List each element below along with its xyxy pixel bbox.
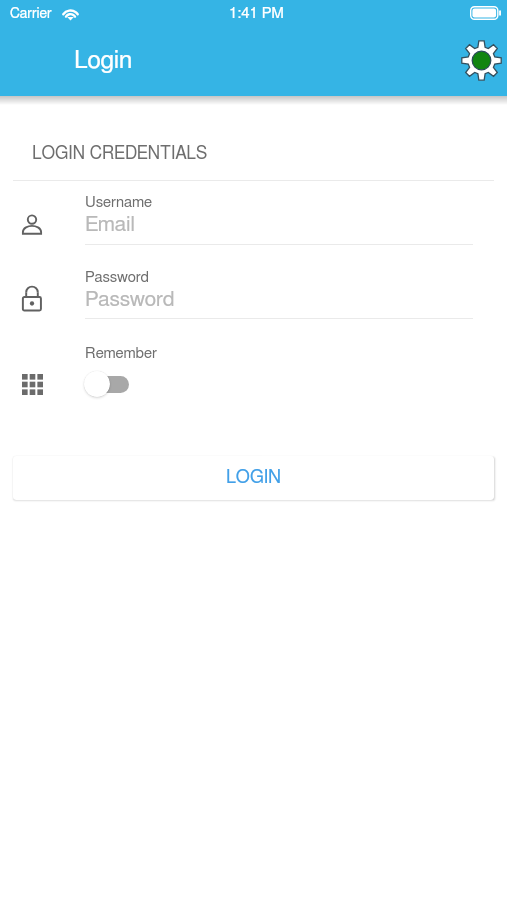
- staticText: Remember: [85, 346, 157, 361]
- staticText: Username: [85, 195, 153, 210]
- staticText: Password: [85, 270, 149, 285]
- button[interactable]: Password: [0, 256, 507, 330]
- staticText: LOGIN: [226, 469, 282, 487]
- staticText: Password: [85, 289, 175, 310]
- button[interactable]: Username: [0, 182, 507, 256]
- staticText: Email: [85, 214, 136, 235]
- staticText: Login: [74, 48, 133, 73]
- staticText: 1:41 PM: [3, 6, 507, 21]
- button[interactable]: Settings: [459, 38, 504, 83]
- staticText: LOGIN CREDENTIALS: [32, 145, 208, 162]
- button[interactable]: LOGIN: [13, 456, 494, 500]
- staticText: Carrier: [10, 7, 52, 21]
- button[interactable]: Remember me switch, off: [84, 369, 132, 399]
